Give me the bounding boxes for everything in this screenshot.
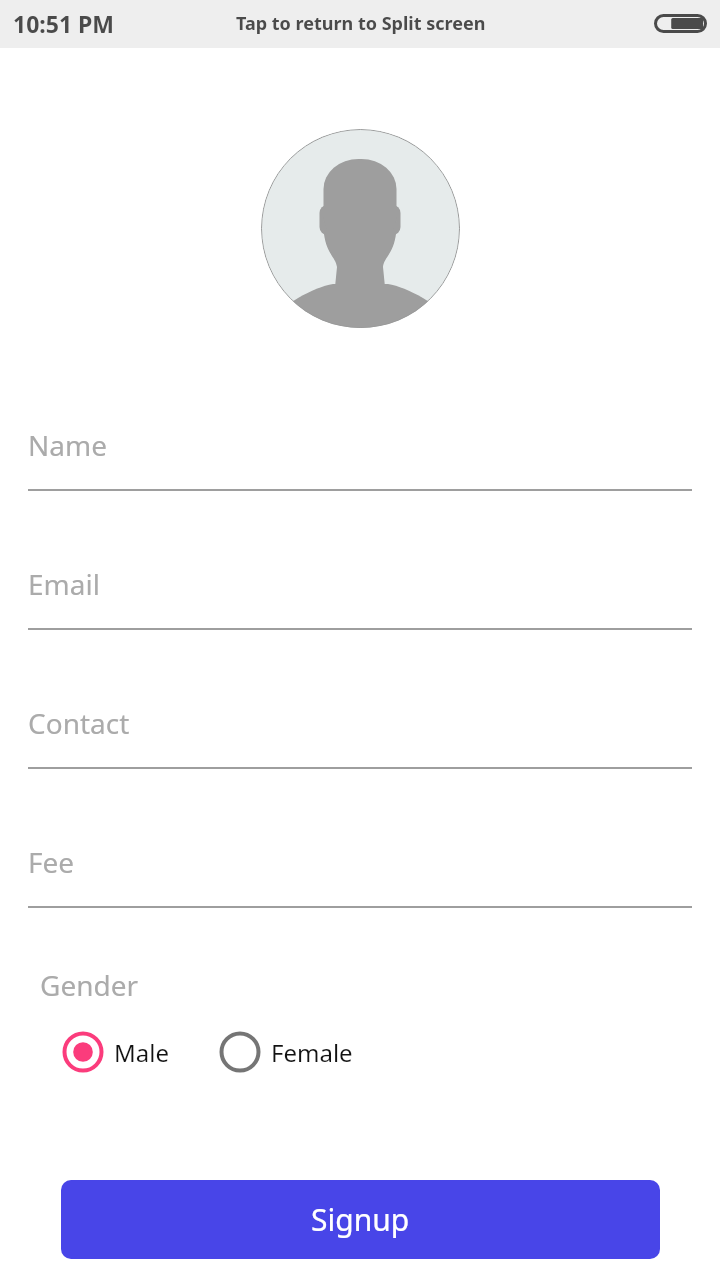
button[interactable]: Email: [0, 565, 720, 629]
staticText: Contact: [28, 704, 130, 742]
button[interactable]: Name: [0, 426, 720, 490]
staticText: Gender: [40, 966, 139, 1004]
button[interactable]: Fee: [0, 843, 720, 907]
staticText: Signup: [311, 1199, 410, 1240]
button[interactable]: Signup: [61, 1180, 660, 1259]
other: Battery: [654, 14, 707, 33]
button[interactable]: Female: [217, 1029, 353, 1075]
staticText: 10:51 PM: [13, 8, 115, 39]
button[interactable]: Change profile photo: [261, 129, 460, 328]
button[interactable]: Tap to return to Split screen: [230, 4, 480, 44]
staticText: Email: [28, 565, 100, 603]
button[interactable]: Contact: [0, 704, 720, 768]
button[interactable]: Male: [60, 1029, 169, 1075]
staticText: Fee: [28, 843, 75, 881]
staticText: Female: [271, 1036, 353, 1069]
staticText: Male: [114, 1036, 169, 1069]
staticText: Name: [28, 426, 107, 464]
staticText: Tap to return to Split screen: [236, 11, 486, 36]
